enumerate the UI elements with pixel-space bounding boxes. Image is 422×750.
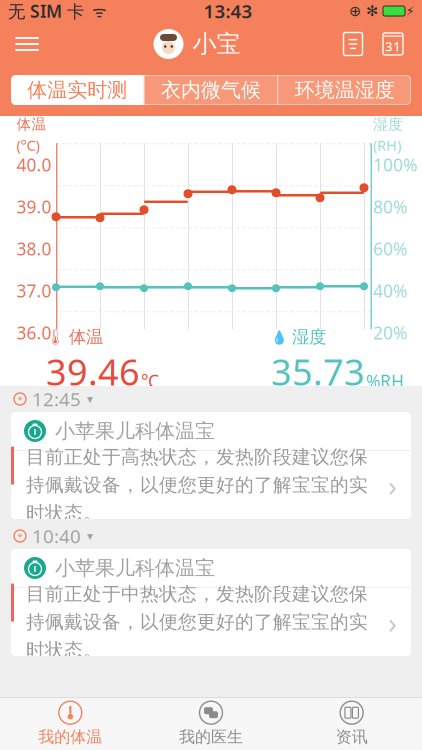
staticText: (°C) xyxy=(16,135,39,155)
staticText: 湿度 xyxy=(292,326,326,348)
button[interactable]: 日历 xyxy=(380,30,406,58)
staticText: °C xyxy=(141,369,159,392)
button[interactable]: 衣内微气候 xyxy=(145,75,277,105)
button[interactable]: 小苹果儿科体温宝 xyxy=(11,412,411,519)
staticText: 12:45 xyxy=(32,387,81,411)
staticText: 40.0 xyxy=(16,153,51,176)
staticText: 目前正处于中热状态，发热阶段建议您保持佩戴设备，以便您更好的了解宝宝的实时状态。 xyxy=(26,583,368,661)
staticText: 资讯 xyxy=(336,727,368,747)
staticText: ⚡︎ xyxy=(406,4,414,18)
staticText: ᯤ xyxy=(84,0,107,22)
staticText: 湿度 xyxy=(373,115,403,133)
button[interactable]: 菜单 xyxy=(0,22,54,66)
staticText: 体温 xyxy=(69,326,103,348)
staticText: 40% xyxy=(373,279,407,302)
staticText: ✻ xyxy=(366,3,378,19)
staticText: 目前正处于高热状态，发热阶段建议您保持佩戴设备，以便您更好的了解宝宝的实时状态。 xyxy=(26,446,368,524)
button[interactable]: 我的医生 xyxy=(141,698,281,750)
staticText: %RH xyxy=(366,369,404,392)
staticText: 80% xyxy=(373,195,407,218)
staticText: ▾ xyxy=(87,392,93,406)
staticText: 无 SIM 卡 xyxy=(8,0,84,22)
staticText: 小苹果儿科体温宝 xyxy=(55,419,215,443)
staticText: ⌖ xyxy=(17,394,22,403)
staticText: ▾ xyxy=(87,529,93,543)
staticText: 100% xyxy=(373,153,417,176)
staticText: ⌖ xyxy=(17,531,22,540)
staticText: › xyxy=(388,602,397,641)
staticText: 环境温湿度 xyxy=(295,78,395,102)
staticText: 39.0 xyxy=(16,195,51,218)
staticText: 衣内微气候 xyxy=(161,78,261,102)
staticText: 小宝 xyxy=(192,29,240,59)
staticText: › xyxy=(388,465,397,504)
staticText: 13:43 xyxy=(203,0,252,23)
button[interactable]: 资讯 xyxy=(281,698,422,750)
staticText: 38.0 xyxy=(16,237,51,260)
staticText: 小苹果儿科体温宝 xyxy=(55,556,215,580)
staticText: 🌡 xyxy=(46,329,65,345)
staticText: 💧 xyxy=(271,329,288,345)
button[interactable]: 小苹果儿科体温宝 xyxy=(11,549,411,656)
staticText: 我的医生 xyxy=(179,727,243,747)
staticText: 体温 xyxy=(16,115,46,133)
staticText: 体温实时测 xyxy=(27,78,127,102)
staticText: 10:40 xyxy=(32,524,81,548)
staticText: 37.0 xyxy=(16,279,51,302)
staticText: 20% xyxy=(373,321,407,344)
staticText: 我的体温 xyxy=(38,727,102,747)
staticText: 36.0 xyxy=(16,321,51,344)
button[interactable]: 记录 xyxy=(340,30,366,58)
staticText: (RH) xyxy=(373,135,401,155)
staticText: 39.46 xyxy=(46,348,140,395)
button[interactable]: 体温实时测 xyxy=(11,75,144,105)
staticText: 35.73 xyxy=(271,348,365,395)
button[interactable]: 我的体温 xyxy=(0,698,141,750)
staticText: 60% xyxy=(373,237,407,260)
staticText: 31 xyxy=(385,37,401,55)
button[interactable]: 环境温湿度 xyxy=(278,75,411,105)
staticText: ⊕ xyxy=(349,3,361,19)
